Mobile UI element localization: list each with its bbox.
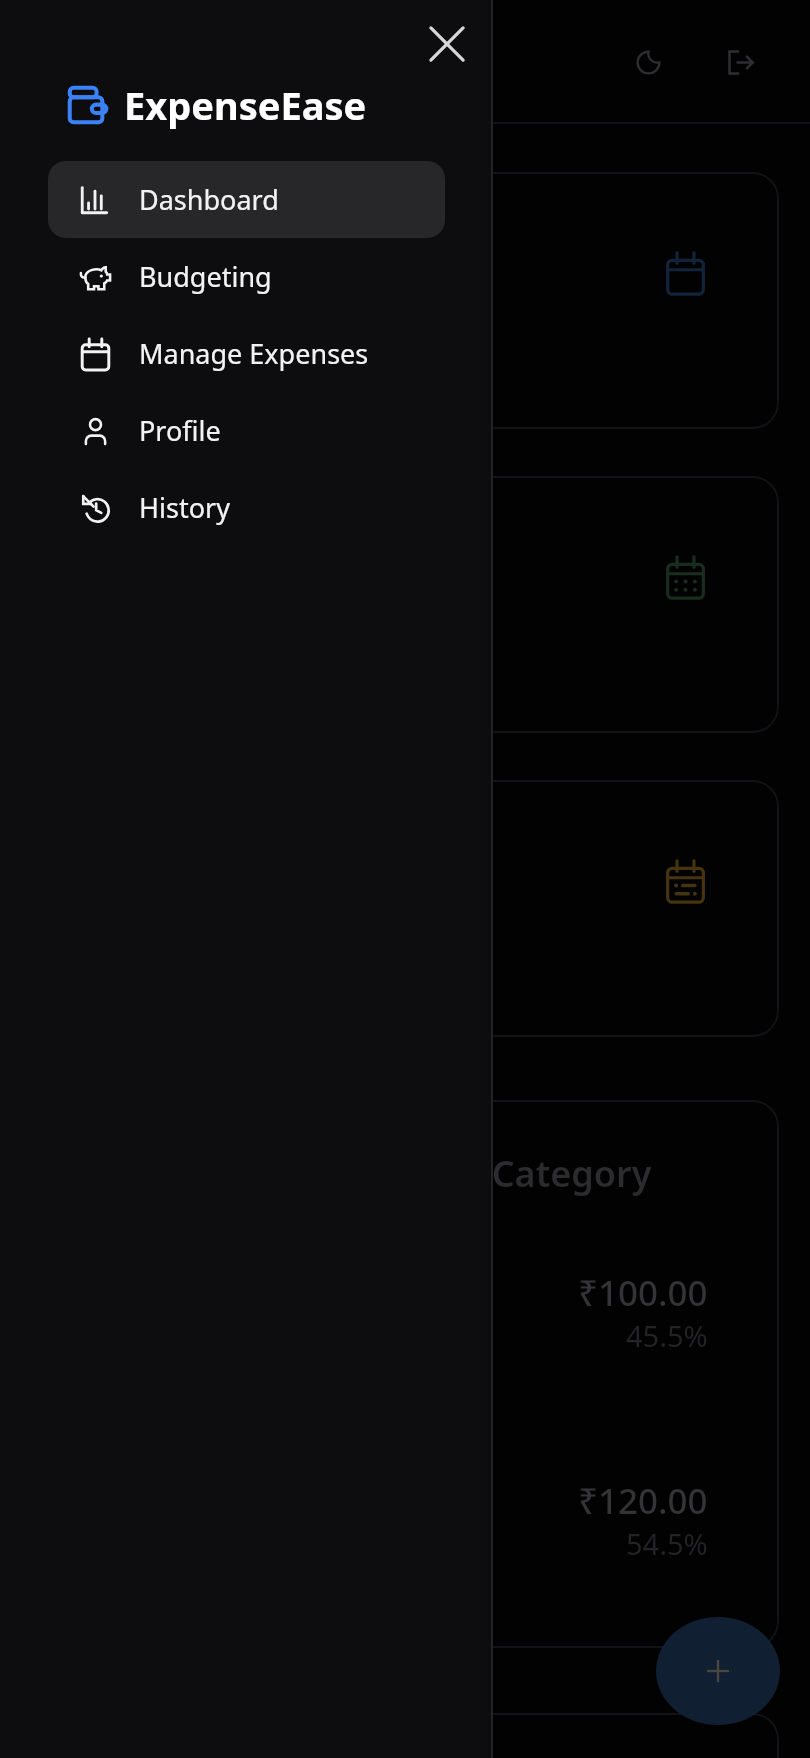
staticText: Manage Expenses	[139, 335, 369, 372]
staticText: Budgeting	[139, 258, 272, 295]
staticText: ExpenseEase	[124, 79, 367, 131]
button[interactable]: History	[48, 469, 445, 546]
button[interactable]: Close menu	[419, 16, 475, 72]
staticText: Expenses by Category	[268, 1149, 652, 1198]
button[interactable]: Log out	[708, 30, 772, 94]
button[interactable]: Add expense	[656, 1617, 780, 1725]
staticText: ₹100.00	[578, 1269, 708, 1317]
staticText: Profile	[139, 412, 221, 449]
button[interactable]: Manage Expenses	[48, 315, 445, 392]
staticText: Dashboard	[139, 181, 279, 218]
staticText: 54.5%	[626, 1524, 708, 1563]
button[interactable]: Dashboard	[48, 161, 445, 238]
button[interactable]: Profile	[48, 392, 445, 469]
staticText: 45.5%	[626, 1316, 708, 1355]
button[interactable]: Budgeting	[48, 238, 445, 315]
button[interactable]: Toggle dark mode	[616, 30, 680, 94]
staticText: ₹120.00	[578, 1477, 708, 1525]
staticText: History	[139, 489, 230, 526]
